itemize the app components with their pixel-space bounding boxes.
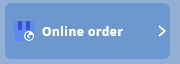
staticText: Online order <box>42 23 124 39</box>
button[interactable]: Online order <box>5 3 170 59</box>
other: Open online order <box>157 25 167 37</box>
